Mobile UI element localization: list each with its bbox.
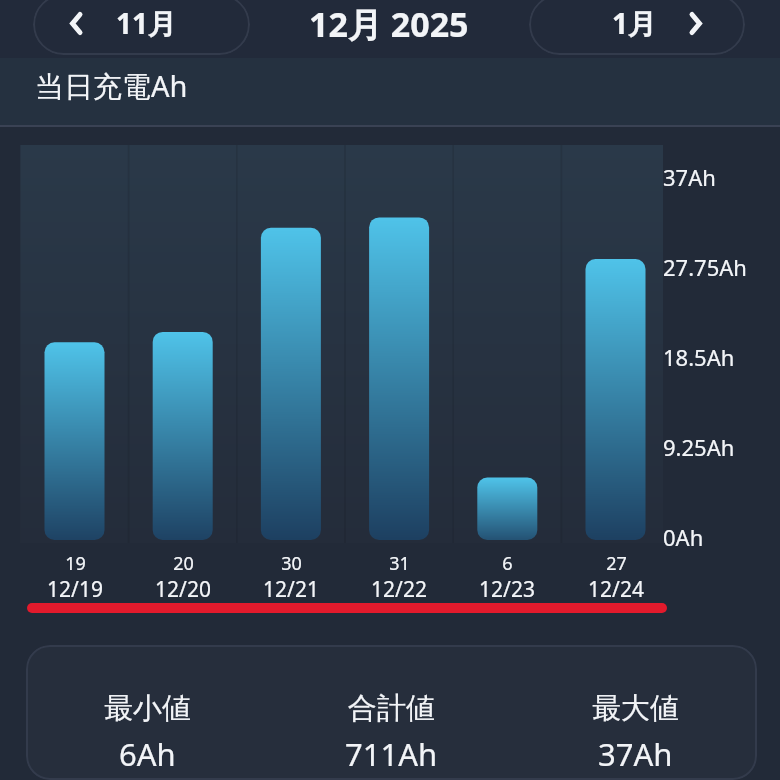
staticText: 12/23 — [479, 575, 535, 604]
staticText: 1月 — [612, 4, 657, 42]
staticText: 18.5Ah — [663, 342, 735, 372]
staticText: 0Ah — [663, 522, 704, 552]
staticText: 11月 — [116, 4, 177, 42]
staticText: 9.25Ah — [663, 432, 735, 462]
staticText: 31 — [389, 551, 410, 576]
staticText: 最小値 — [104, 690, 191, 727]
staticText: 12/24 — [588, 575, 644, 604]
staticText: 12/19 — [47, 575, 103, 604]
staticText: 12/20 — [155, 575, 211, 604]
button[interactable]: 11月 — [33, 0, 250, 55]
staticText: 12/21 — [263, 575, 319, 604]
staticText: 27 — [606, 551, 627, 576]
staticText: 30 — [281, 551, 302, 576]
staticText: 20 — [173, 551, 194, 576]
staticText: 6Ah — [119, 733, 176, 775]
staticText: 711Ah — [345, 733, 438, 775]
staticText: 12/22 — [371, 575, 427, 604]
staticText: 合計値 — [348, 690, 435, 727]
button[interactable]: 最小値 — [26, 645, 757, 780]
button[interactable]: 1月 — [529, 0, 745, 55]
staticText: 37Ah — [663, 162, 716, 192]
staticText: 12月 2025 — [309, 1, 469, 47]
staticText: 27.75Ah — [663, 252, 747, 282]
staticText: 6 — [502, 551, 513, 576]
staticText: 当日充電Ah — [35, 66, 188, 106]
staticText: 37Ah — [598, 733, 673, 775]
staticText: 最大値 — [592, 690, 679, 727]
staticText: 19 — [65, 551, 86, 576]
